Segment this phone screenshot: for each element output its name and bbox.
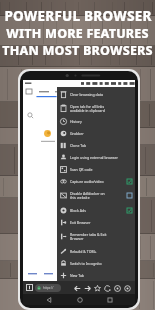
staticText: New Tab [70,273,132,278]
staticText: History [70,119,132,124]
button[interactable]: Exit Browser [57,216,135,228]
button[interactable]: New Tab [57,269,135,281]
staticText: Block Ads [70,208,127,213]
button[interactable]: Scan QR code [57,163,135,175]
button[interactable]: Home [74,294,85,305]
button[interactable]: Recents [104,294,115,305]
staticText: POWERFUL BROWSER [4,7,152,25]
button[interactable]: Rebuild & TOM+ [57,245,135,257]
button[interactable]: Clear browsing data [57,89,135,100]
staticText: Grabber [70,131,132,136]
staticText: WITH MORE FEATURES [6,25,149,42]
staticText: THAN MOST BROWSERS [2,42,153,59]
staticText: Capture audio/video [70,179,127,184]
button[interactable]: Reload [102,283,112,293]
staticText: Clone Tab [70,143,132,148]
button[interactable]: Remember tabs & Exit Browser [57,228,135,245]
button[interactable]: Forward [82,283,92,293]
button[interactable]: Switch to Incognito [57,257,135,269]
button[interactable]: Disable Adblocker on this website [57,187,135,204]
staticText: https:// [43,286,54,290]
staticText: Disable Adblocker on this website [70,191,127,200]
button[interactable]: Login using external browser [57,151,135,163]
button[interactable]: Back [72,283,82,293]
button[interactable]: Grabber [57,127,135,139]
button[interactable]: Tabs [26,284,33,291]
button[interactable]: Block Ads [57,204,135,216]
staticText: Scan QR code [70,167,132,172]
button[interactable]: Reader [122,283,132,293]
staticText: Login using external browser [70,155,132,160]
staticText: Exit Browser [70,220,132,225]
button[interactable]: https:// [35,284,61,292]
staticText: Switch to Incognito [70,261,132,266]
button[interactable]: Capture audio/video [57,175,135,187]
button[interactable]: Bookmark [92,283,102,293]
staticText: Clear browsing data [70,92,132,97]
button[interactable]: Clone Tab [57,139,135,151]
staticText: Remember tabs & Exit Browser [70,232,132,241]
staticText: Open tab for all links available in clip… [70,104,132,113]
button[interactable]: Settings [112,283,122,293]
button[interactable]: Back [43,294,54,305]
staticText: Rebuild & TOM+ [70,249,132,254]
button[interactable]: Open tab for all links available in clip… [57,100,135,116]
button[interactable]: History [57,116,135,127]
